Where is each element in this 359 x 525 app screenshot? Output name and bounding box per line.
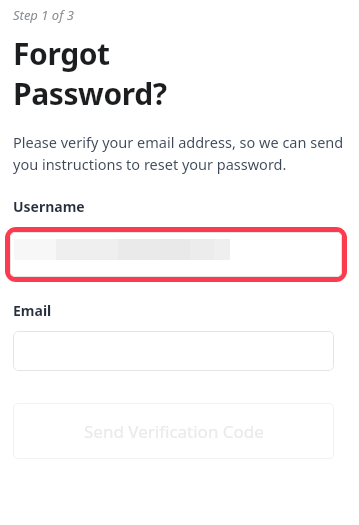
button[interactable]: Email input field [13, 331, 334, 371]
staticText: Please verify your email address, so we … [13, 132, 348, 174]
staticText: Forgot Password? [13, 33, 167, 114]
button[interactable]: Send Verification Code [13, 403, 334, 459]
staticText: Send Verification Code [84, 420, 264, 443]
staticText: Email [13, 301, 52, 320]
staticText: Step 1 of 3 [13, 6, 74, 24]
staticText: Username [13, 197, 85, 216]
button[interactable] [5, 227, 347, 282]
